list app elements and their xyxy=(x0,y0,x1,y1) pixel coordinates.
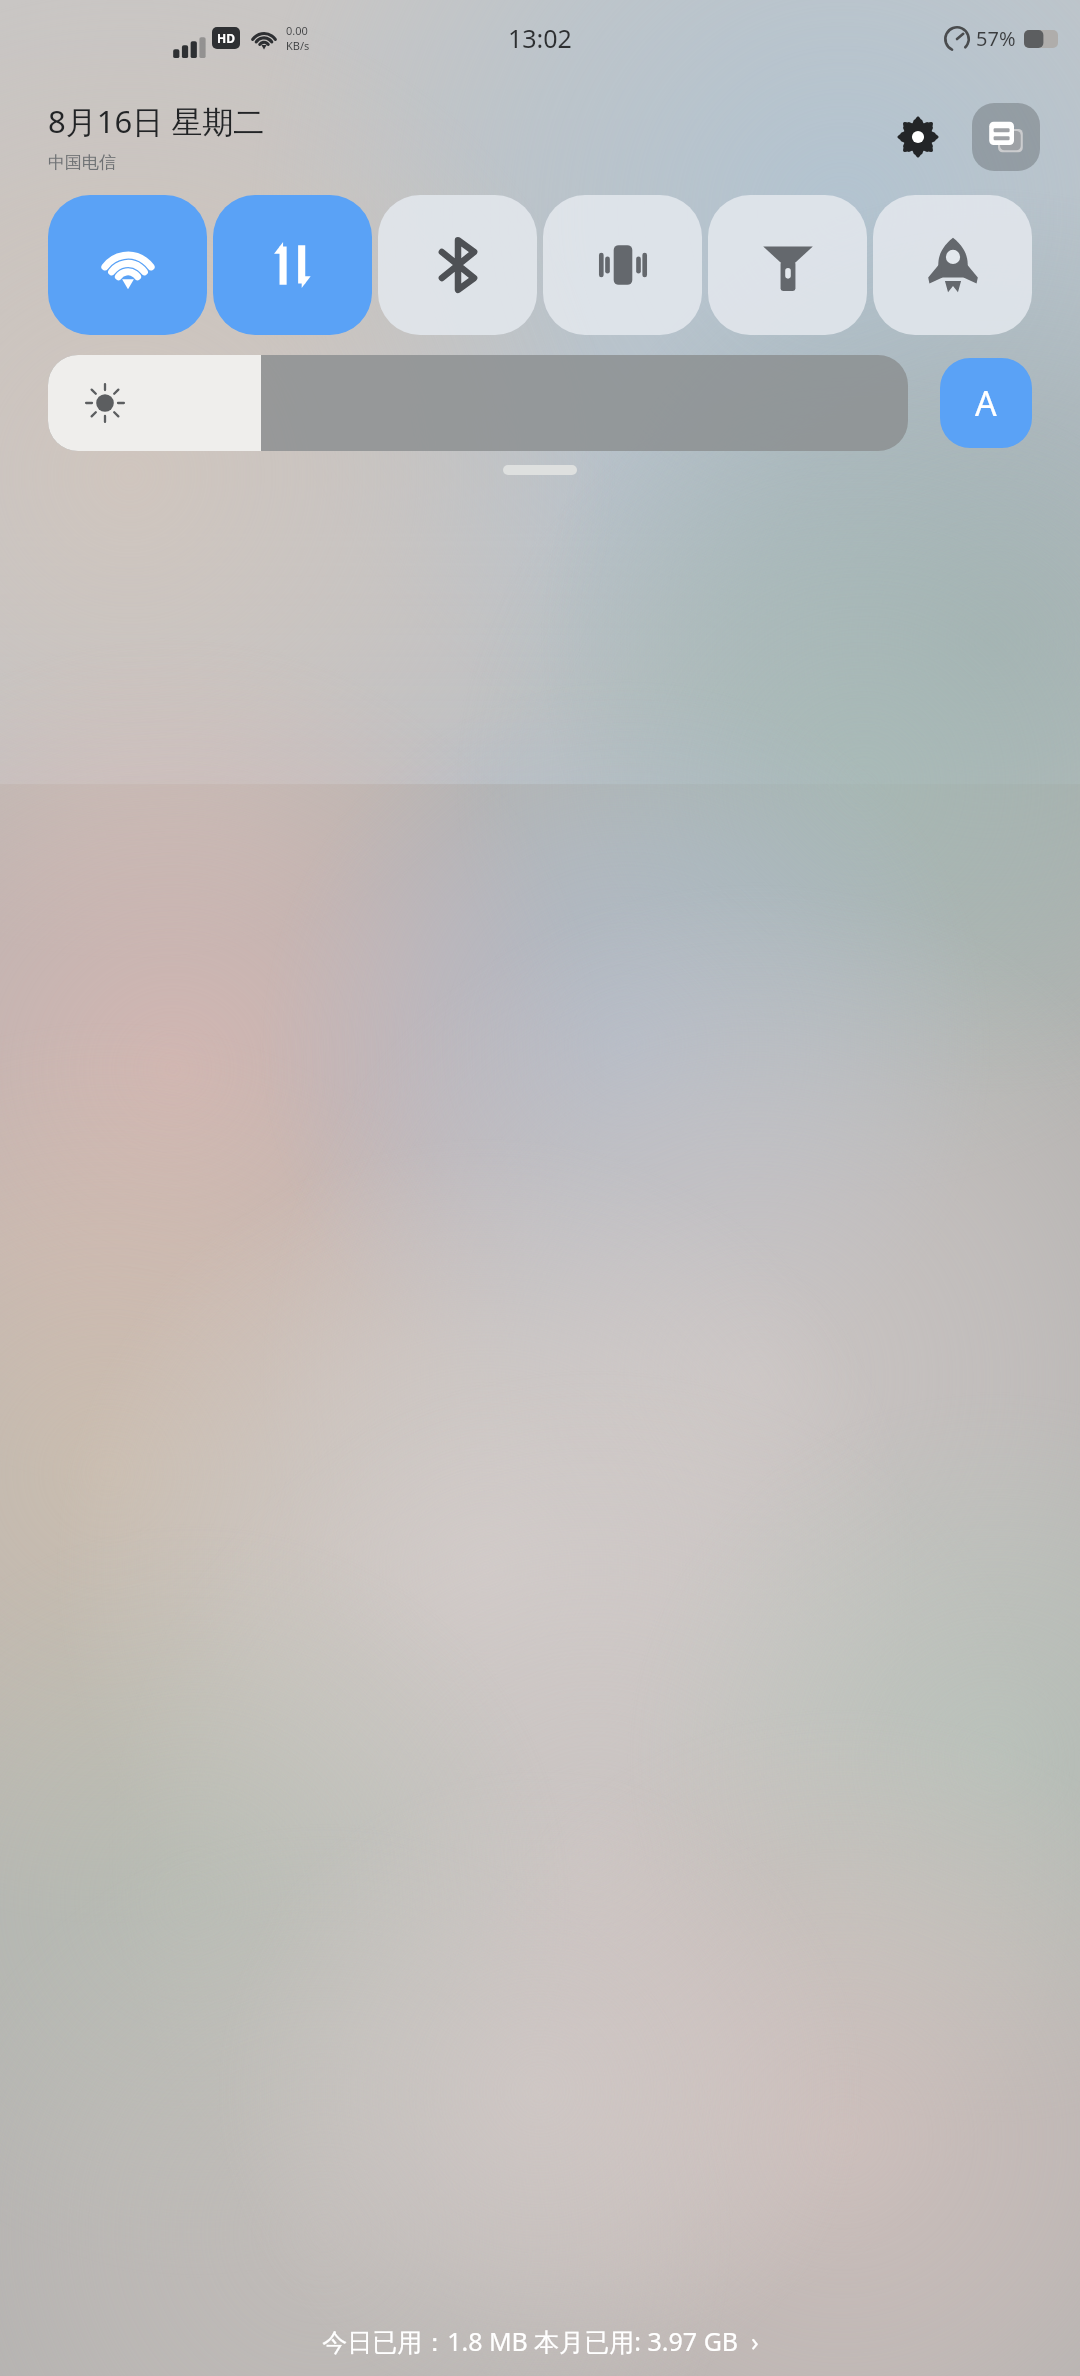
button[interactable]: Flashlight xyxy=(708,195,867,335)
button[interactable]: Mobile data xyxy=(213,195,372,335)
staticText: 8月16日 星期二 xyxy=(48,100,265,142)
button[interactable]: Edit tiles xyxy=(972,103,1040,171)
staticText: 13:02 xyxy=(508,21,572,55)
button[interactable]: Bluetooth xyxy=(378,195,537,335)
button[interactable]: Settings xyxy=(886,105,950,169)
button[interactable]: Vibrate xyxy=(543,195,702,335)
staticText: 中国电信 xyxy=(48,152,116,173)
button[interactable]: Brightness xyxy=(48,355,908,451)
staticText: KB/s xyxy=(286,38,310,53)
staticText: 今日已用：1.8 MB 本月已用: 3.97 GB › xyxy=(322,2324,759,2358)
button[interactable]: Auto brightness xyxy=(940,358,1032,448)
staticText: A xyxy=(975,380,997,426)
button[interactable]: Wi-Fi xyxy=(48,195,207,335)
button[interactable]: Accelerate xyxy=(873,195,1032,335)
button[interactable]: Expand xyxy=(503,465,577,475)
staticText: HD xyxy=(217,30,235,46)
staticText: 0.00 xyxy=(286,23,308,38)
staticText: 57% xyxy=(976,25,1016,52)
